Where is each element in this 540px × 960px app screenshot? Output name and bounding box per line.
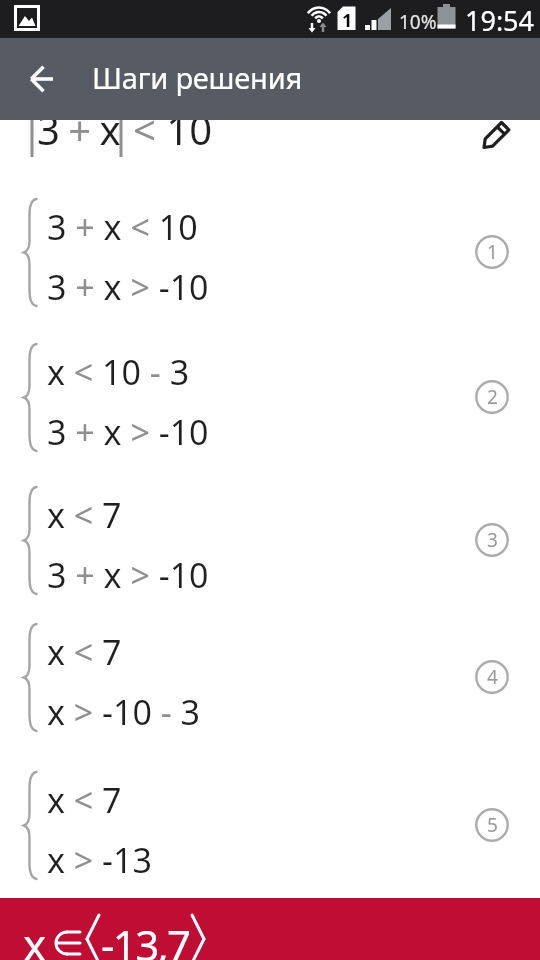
staticText: 3 + x — [37, 102, 120, 156]
button[interactable] — [22, 57, 66, 101]
staticText: 3 + x > -10 — [47, 264, 209, 310]
staticText: 10% — [399, 9, 437, 35]
staticText: 2 — [487, 384, 498, 410]
staticText: 3 + x < 10 — [47, 204, 198, 250]
staticText: x < 7 — [47, 629, 122, 675]
staticText: -13,7 — [101, 916, 190, 960]
button[interactable] — [0, 98, 540, 182]
staticText: x < 10 - 3 — [47, 349, 190, 395]
button[interactable]: x < 10 - 3 — [0, 326, 540, 469]
staticText: 4 — [487, 664, 498, 690]
staticText: Шаги решения — [92, 58, 303, 97]
button[interactable]: x < 7 — [0, 754, 540, 897]
button[interactable]: x < 7 — [0, 469, 540, 612]
staticText: 19:54 — [465, 2, 535, 39]
button[interactable]: 3 + x < 10 — [0, 181, 540, 324]
button[interactable]: x — [0, 898, 540, 960]
staticText: x > -13 — [47, 837, 152, 883]
staticText: 3 + x > -10 — [47, 552, 209, 598]
staticText: 1 — [487, 239, 498, 265]
staticText: x < 7 — [47, 492, 122, 538]
staticText: 3 + x > -10 — [47, 409, 209, 455]
staticText: 1 — [342, 8, 353, 33]
staticText: x — [23, 914, 47, 960]
staticText: 3 — [487, 527, 498, 553]
staticText: 5 — [487, 812, 498, 838]
staticText: x > -10 - 3 — [47, 689, 201, 735]
staticText: x < 7 — [47, 777, 122, 823]
staticText: < 10 — [133, 102, 213, 156]
button[interactable] — [478, 118, 514, 152]
button[interactable]: x < 7 — [0, 606, 540, 749]
